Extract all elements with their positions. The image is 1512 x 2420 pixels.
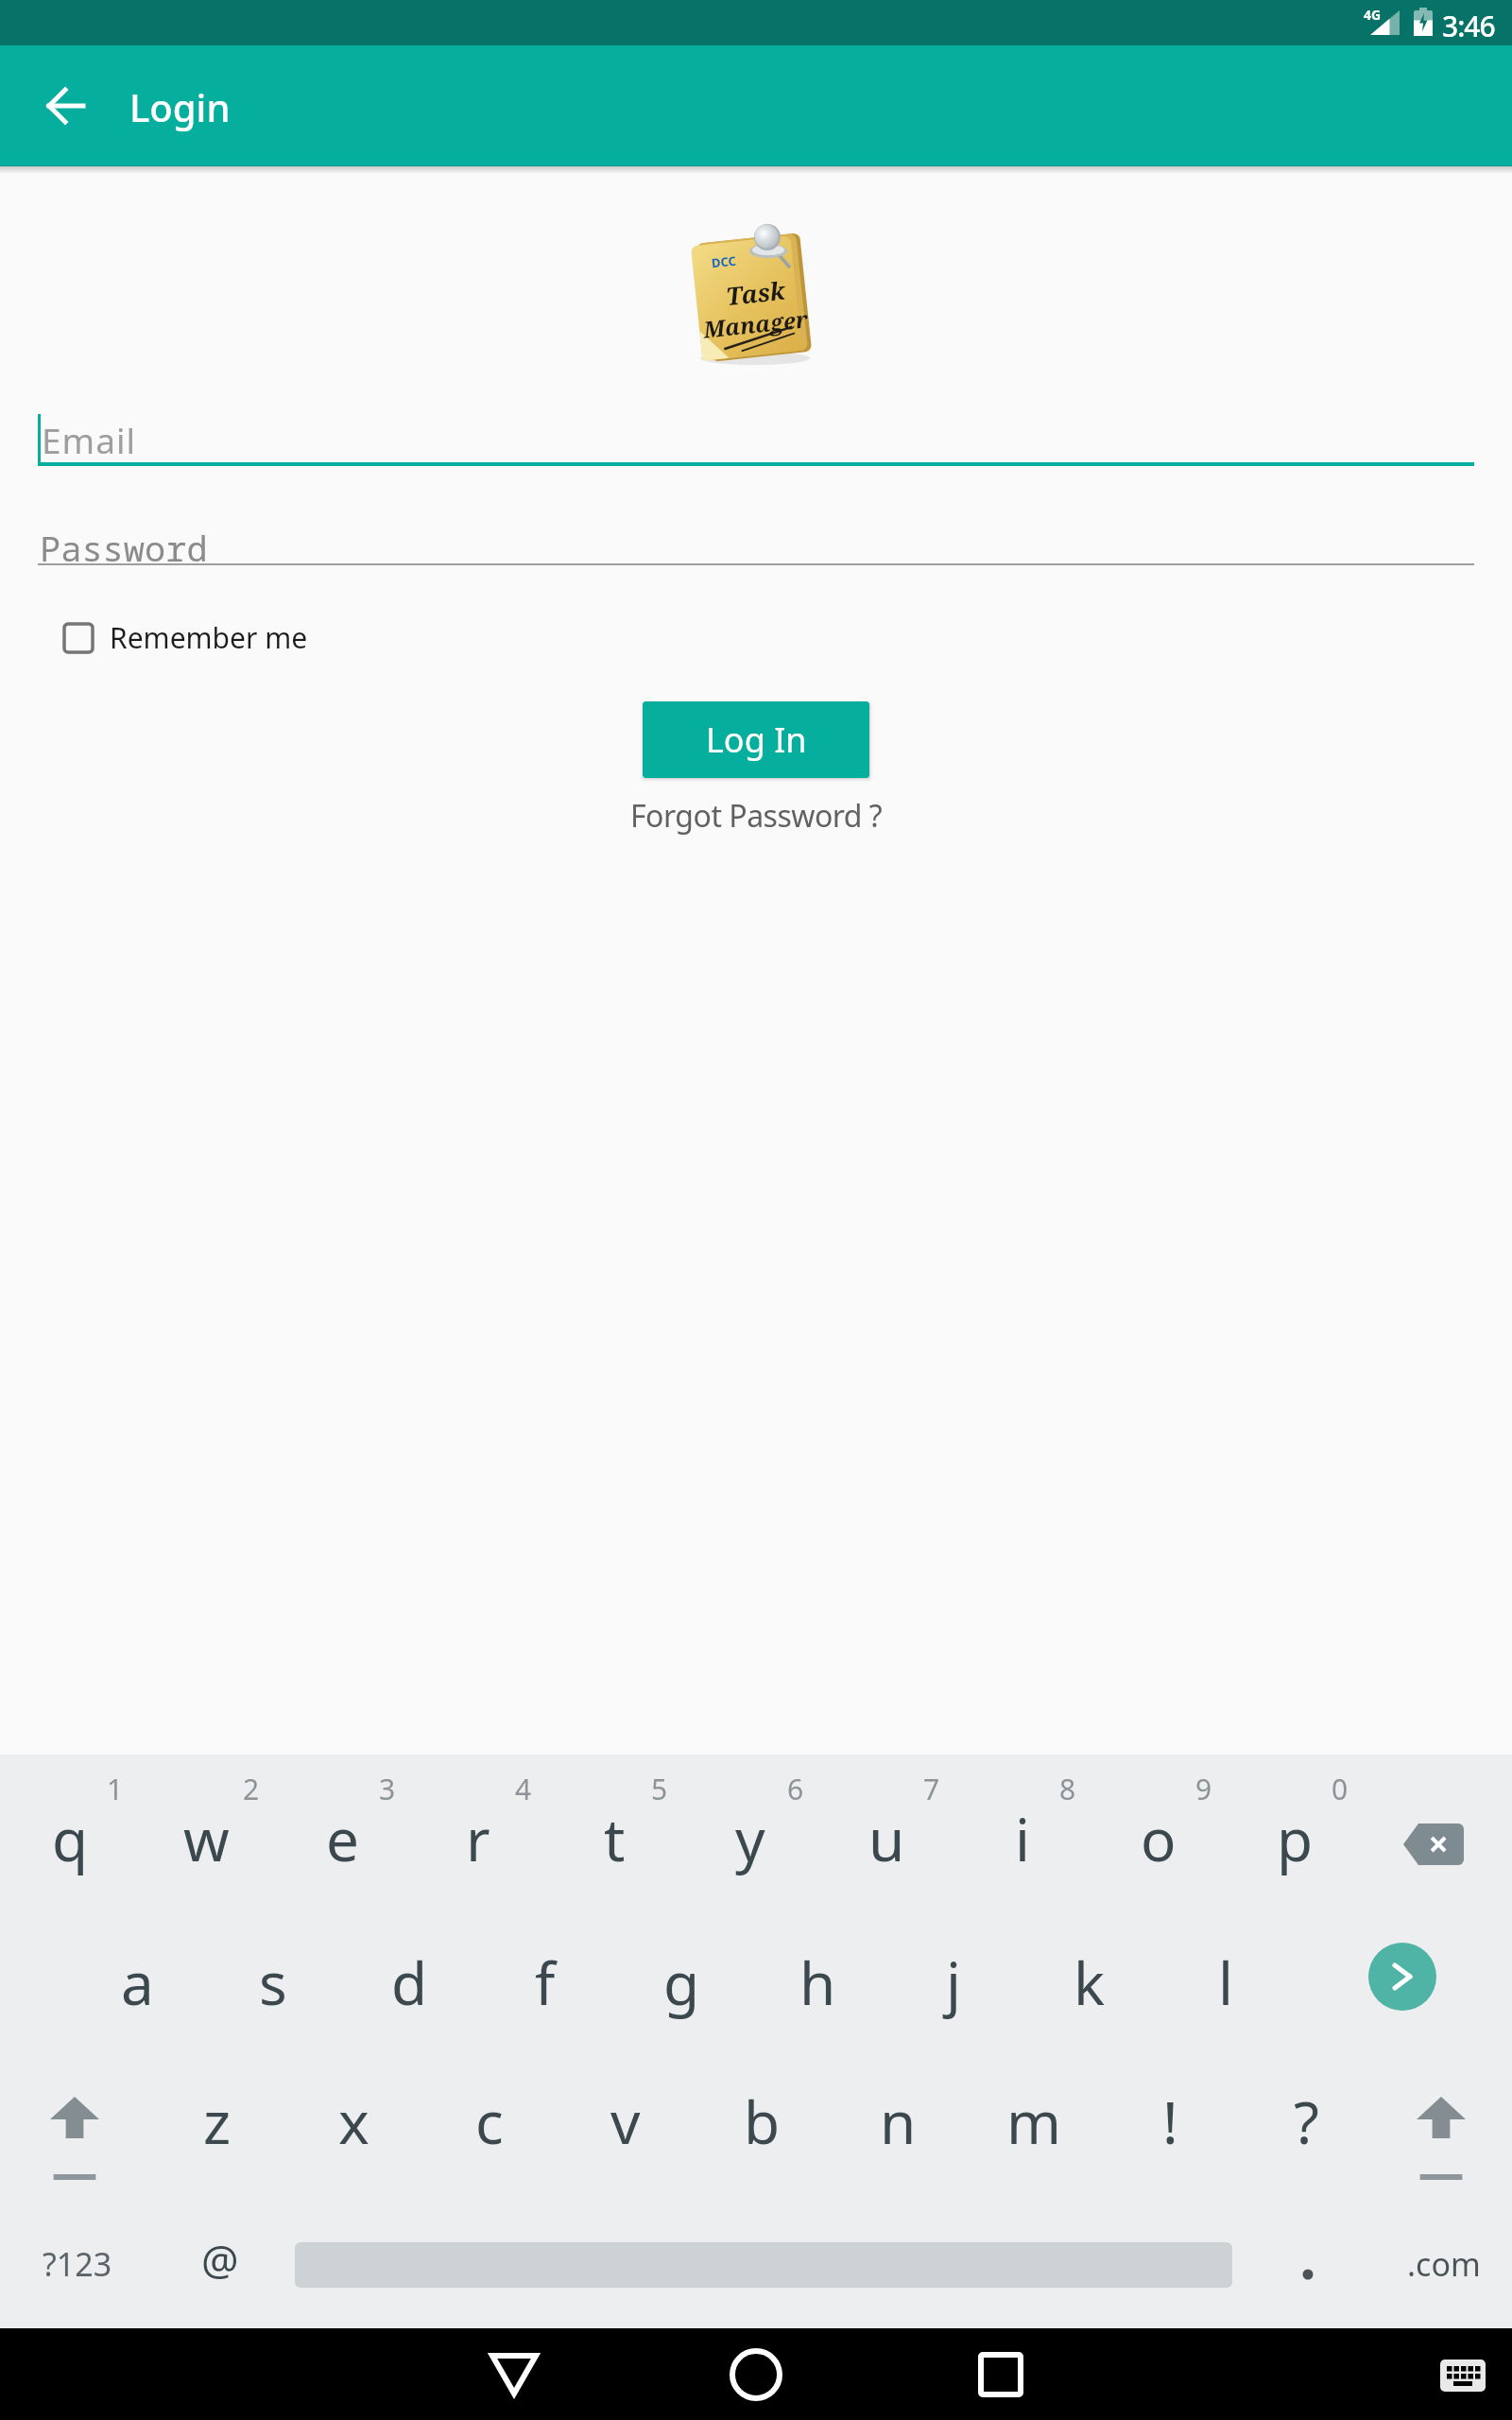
staticText: @	[201, 2231, 239, 2288]
staticText: Task	[724, 273, 787, 312]
staticText: i	[1015, 1799, 1030, 1878]
staticText: g	[663, 1943, 700, 2022]
staticText: p	[1277, 1799, 1314, 1878]
button[interactable]	[730, 2348, 782, 2401]
button[interactable]	[149, 2061, 285, 2165]
button[interactable]	[1238, 2061, 1374, 2165]
button[interactable]	[1022, 1925, 1158, 2029]
button[interactable]	[2, 1789, 138, 1893]
staticText: f	[535, 1943, 556, 2022]
button[interactable]	[45, 87, 91, 125]
button[interactable]	[1102, 2061, 1238, 2165]
staticText: c	[475, 2082, 504, 2161]
button[interactable]	[205, 1925, 341, 2029]
button[interactable]	[818, 1789, 954, 1893]
staticText: b	[744, 2082, 781, 2161]
staticText: 3	[379, 1770, 396, 1808]
button[interactable]	[1158, 1925, 1294, 2029]
button[interactable]	[341, 1925, 477, 2029]
button[interactable]	[410, 1789, 546, 1893]
staticText: ?123	[43, 2242, 112, 2286]
button[interactable]	[546, 1789, 682, 1893]
staticText: 4	[515, 1770, 532, 1808]
staticText: a	[121, 1943, 154, 2022]
button[interactable]: Forgot Password ?	[0, 792, 1512, 839]
staticText: Login	[129, 81, 231, 132]
staticText: e	[326, 1799, 359, 1878]
button[interactable]	[285, 2061, 421, 2165]
button[interactable]	[1384, 2097, 1498, 2201]
staticText: 8	[1059, 1770, 1076, 1808]
button[interactable]: Log In	[643, 701, 869, 778]
button[interactable]	[421, 2061, 558, 2165]
staticText: 2	[243, 1770, 260, 1808]
staticText: ?	[1294, 2082, 1319, 2161]
button[interactable]	[477, 1925, 613, 2029]
button[interactable]	[138, 1789, 274, 1893]
staticText: o	[1141, 1799, 1177, 1878]
staticText: y	[735, 1799, 765, 1878]
button[interactable]	[1375, 1802, 1492, 1887]
staticText: Log In	[706, 717, 807, 763]
button[interactable]	[749, 1925, 885, 2029]
button[interactable]	[274, 1789, 410, 1893]
staticText: 4G	[1364, 6, 1382, 24]
button[interactable]	[295, 2242, 1232, 2288]
button[interactable]	[38, 462, 1474, 466]
button[interactable]	[966, 2061, 1102, 2165]
button[interactable]	[830, 2061, 966, 2165]
staticText: 3:46	[1442, 7, 1495, 45]
staticText: n	[880, 2082, 917, 2161]
button[interactable]	[1091, 1789, 1227, 1893]
staticText: .com	[1407, 2242, 1481, 2286]
button[interactable]	[18, 2097, 131, 2201]
button[interactable]	[490, 2353, 539, 2396]
staticText: r	[466, 1799, 490, 1878]
button[interactable]	[682, 1789, 818, 1893]
staticText: v	[610, 2082, 641, 2161]
staticText: t	[604, 1799, 626, 1878]
staticText: !	[1162, 2082, 1178, 2161]
staticText: h	[799, 1943, 836, 2022]
button[interactable]	[885, 1925, 1022, 2029]
staticText: Manager	[702, 303, 809, 345]
staticText: k	[1074, 1943, 1106, 2022]
button[interactable]	[1368, 1943, 1436, 2011]
staticText: DCC	[711, 252, 737, 272]
staticText: w	[183, 1799, 230, 1878]
button[interactable]	[38, 563, 1474, 565]
button[interactable]	[978, 2352, 1023, 2397]
button[interactable]	[694, 2061, 830, 2165]
button[interactable]	[558, 2061, 694, 2165]
button[interactable]	[1227, 1789, 1363, 1893]
button[interactable]	[69, 1925, 205, 2029]
staticText: Password	[40, 524, 208, 571]
staticText: l	[1218, 1943, 1233, 2022]
staticText: 7	[923, 1770, 940, 1808]
staticText: 9	[1195, 1770, 1212, 1808]
staticText: Email	[42, 416, 137, 463]
staticText: 6	[787, 1770, 804, 1808]
staticText: d	[391, 1943, 428, 2022]
staticText: j	[946, 1943, 961, 2022]
staticText: q	[52, 1799, 89, 1878]
staticText: 0	[1332, 1770, 1349, 1808]
staticText: Remember me	[110, 618, 308, 657]
button[interactable]	[1440, 2359, 1486, 2392]
staticText: u	[868, 1799, 905, 1878]
button[interactable]	[954, 1789, 1091, 1893]
staticText: m	[1006, 2082, 1061, 2161]
staticText: z	[203, 2082, 232, 2161]
button[interactable]	[613, 1925, 749, 2029]
button[interactable]: Remember me	[62, 618, 308, 657]
staticText: s	[259, 1943, 287, 2022]
staticText: 1	[107, 1770, 124, 1808]
staticText: Forgot Password ?	[630, 795, 883, 837]
staticText: 5	[651, 1770, 668, 1808]
staticText: x	[338, 2082, 369, 2161]
